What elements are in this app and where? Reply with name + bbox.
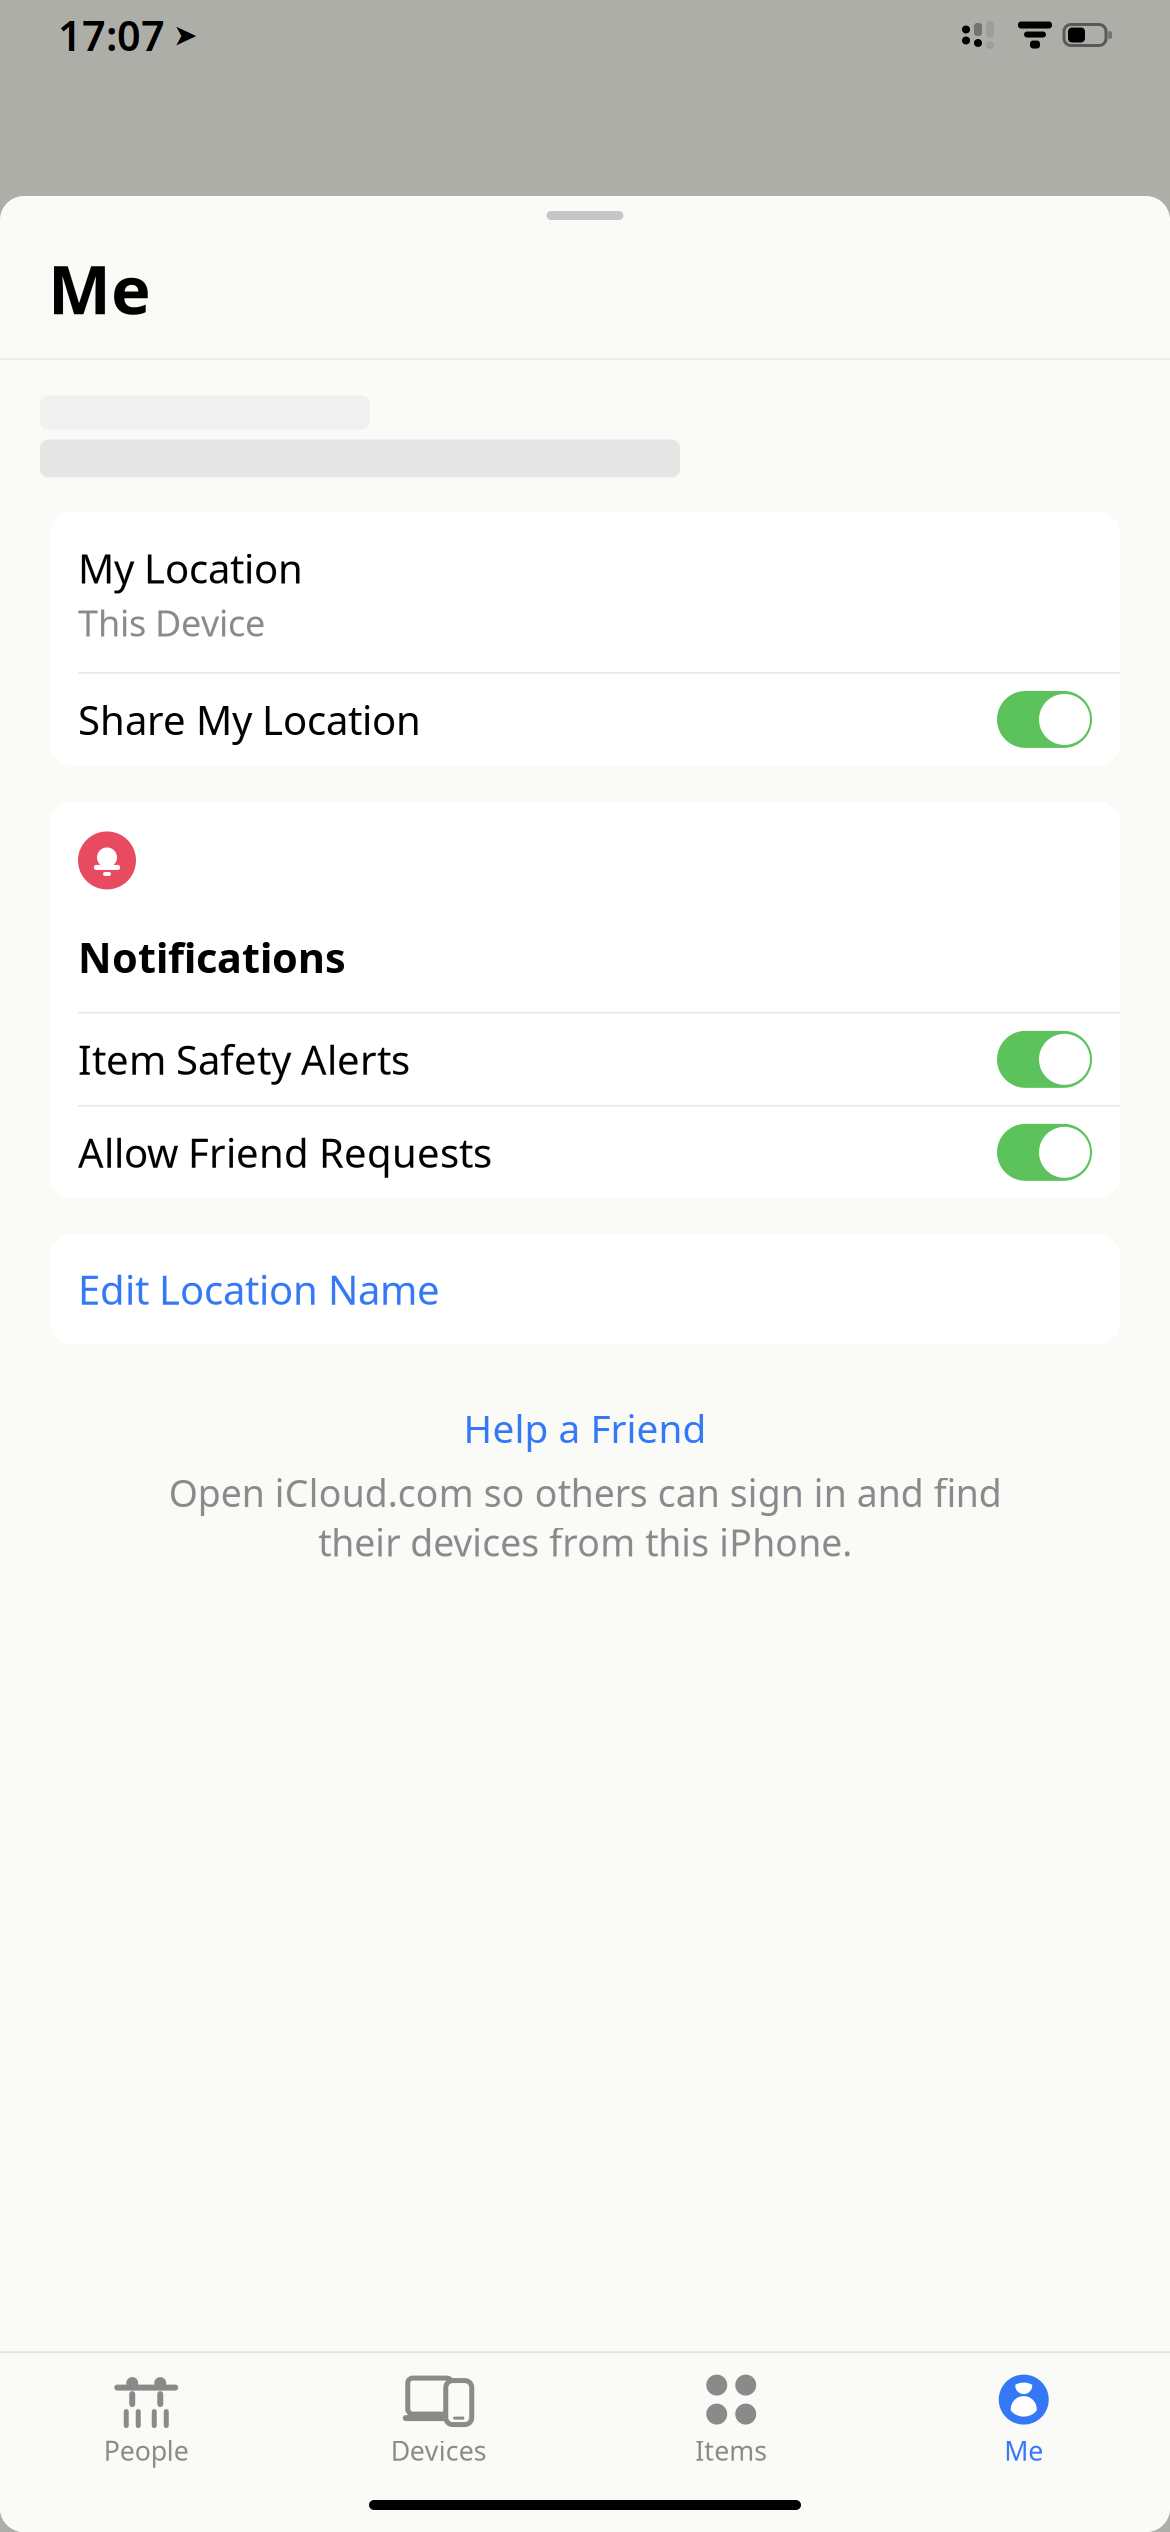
button[interactable]: My Location <box>50 511 1120 672</box>
button[interactable]: Me <box>877 2363 1170 2472</box>
button[interactable]: Allow Friend Requests <box>50 1106 1120 1198</box>
staticText: Notifications <box>78 929 346 984</box>
button[interactable]: Edit Location Name <box>50 1234 1120 1344</box>
staticText: Share My Location <box>78 693 421 746</box>
staticText: Edit Location Name <box>78 1263 440 1316</box>
staticText: Item Safety Alerts <box>78 1033 410 1086</box>
button[interactable]: Items <box>585 2363 877 2472</box>
button[interactable]: Item Safety Alerts <box>50 1013 1120 1105</box>
button[interactable]: People <box>0 2363 292 2472</box>
button[interactable]: Help a Friend <box>463 1402 706 1454</box>
staticText: People <box>104 2433 189 2468</box>
staticText: Me <box>48 244 151 332</box>
button[interactable]: Devices <box>292 2363 585 2472</box>
staticText: Me <box>1004 2433 1043 2468</box>
staticText: ➤ <box>173 18 198 52</box>
staticText: My Location <box>78 541 303 595</box>
staticText: This Device <box>78 599 265 646</box>
button[interactable]: Share My Location <box>50 673 1120 765</box>
staticText: 17:07 <box>58 8 165 62</box>
staticText: Allow Friend Requests <box>78 1126 492 1179</box>
staticText: Help a Friend <box>463 1402 706 1454</box>
staticText: Devices <box>391 2433 487 2468</box>
staticText: Open iCloud.com so others can sign in an… <box>168 1468 1001 1567</box>
staticText: Items <box>695 2433 767 2468</box>
